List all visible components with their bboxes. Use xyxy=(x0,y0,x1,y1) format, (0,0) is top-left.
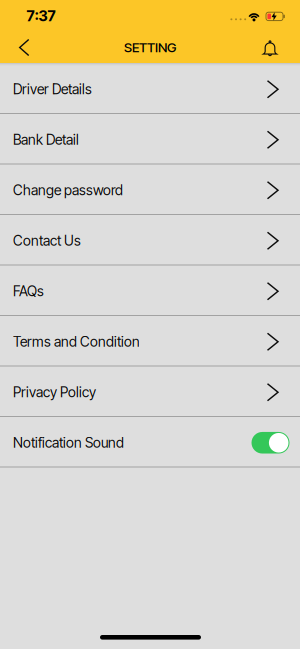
button[interactable]: FAQs xyxy=(0,265,300,315)
staticText: Bank Detail xyxy=(13,131,79,148)
button[interactable]: Notification Sound xyxy=(251,432,289,453)
staticText: FAQs xyxy=(13,283,44,300)
button[interactable]: Contact Us xyxy=(0,215,300,264)
button[interactable]: Terms and Condition xyxy=(0,316,300,365)
button[interactable]: Change password xyxy=(0,164,300,214)
staticText: Terms and Condition xyxy=(13,333,140,350)
button[interactable]: Driver Details xyxy=(0,63,300,113)
staticText: Change password xyxy=(13,182,123,199)
button[interactable]: Notifications xyxy=(254,34,285,63)
button[interactable]: Back xyxy=(10,32,39,62)
staticText: 7:37 xyxy=(26,7,55,25)
staticText: Contact Us xyxy=(13,232,81,249)
button[interactable]: Bank Detail xyxy=(0,114,300,163)
staticText: Privacy Policy xyxy=(13,384,96,401)
button[interactable]: Privacy Policy xyxy=(0,366,300,416)
staticText: SETTING xyxy=(124,39,176,55)
staticText: Notification Sound xyxy=(13,434,124,451)
staticText: Driver Details xyxy=(13,81,92,98)
